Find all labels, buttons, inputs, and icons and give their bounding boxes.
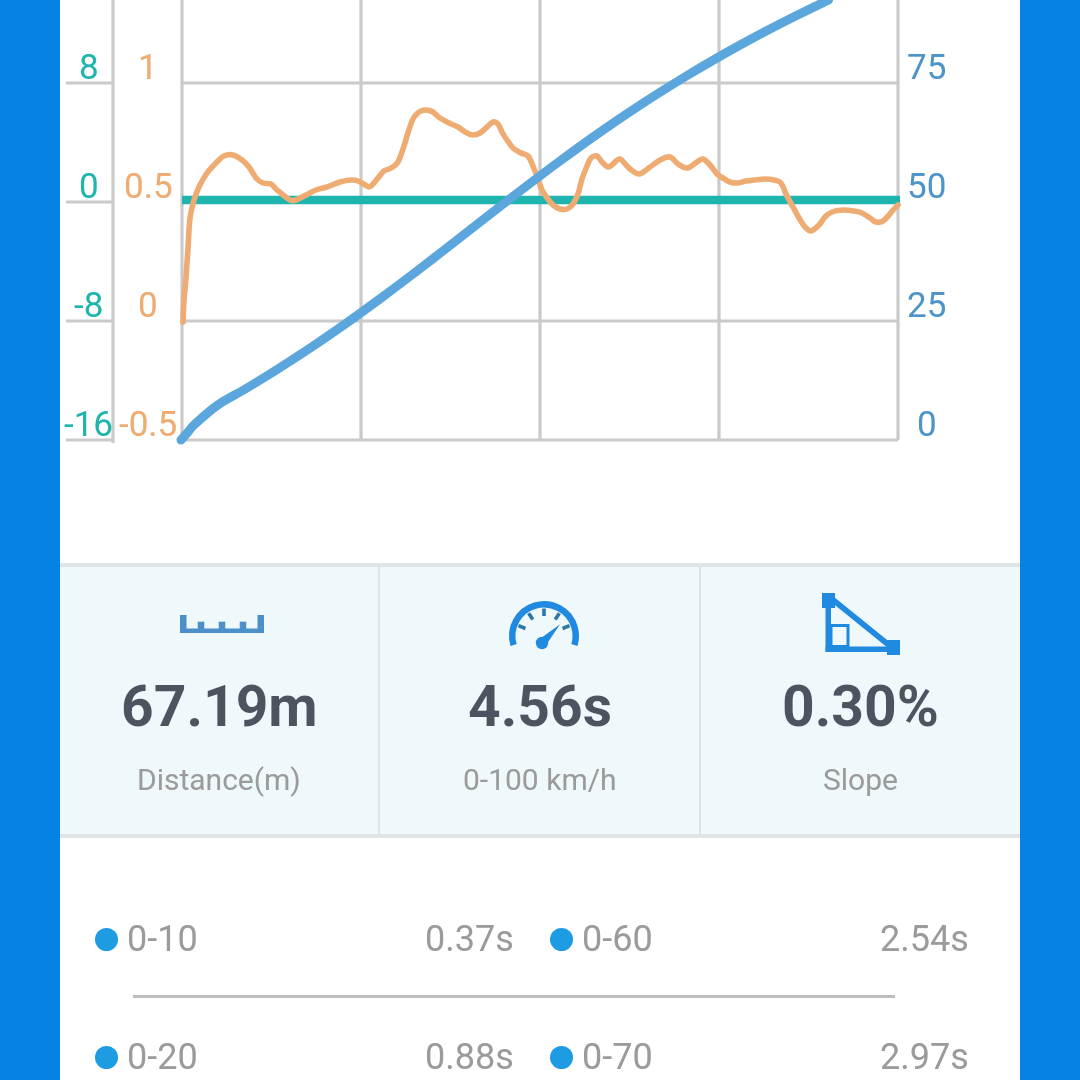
staticText: 0-100 km/h <box>463 762 617 797</box>
button[interactable]: 0-20 <box>95 1034 514 1080</box>
staticText: 0-70 <box>582 1036 653 1078</box>
button[interactable]: Slope <box>701 567 1020 834</box>
staticText: 50 <box>907 166 947 207</box>
button[interactable]: 0-60 <box>550 897 969 981</box>
staticText: 0 <box>917 404 937 445</box>
staticText: -8 <box>74 285 104 326</box>
staticText: 0 <box>138 285 158 326</box>
staticText: 2.54s <box>880 918 969 960</box>
staticText: 0 <box>79 166 99 207</box>
button[interactable]: Acceleration <box>380 567 699 834</box>
staticText: 8 <box>79 47 99 88</box>
button[interactable]: 0-10 <box>95 897 514 981</box>
staticText: 1 <box>138 47 158 88</box>
staticText: -0.5 <box>119 404 178 445</box>
staticText: 0.37s <box>425 918 514 960</box>
staticText: 4.56s <box>468 673 612 740</box>
staticText: 0.5 <box>124 166 173 207</box>
staticText: 67.19m <box>121 673 318 740</box>
staticText: 0.88s <box>425 1036 514 1078</box>
staticText: 75 <box>907 47 947 88</box>
staticText: -16 <box>64 404 114 445</box>
staticText: 0-10 <box>127 918 198 960</box>
staticText: 0-60 <box>582 918 653 960</box>
staticText: 25 <box>907 285 947 326</box>
staticText: 2.97s <box>880 1036 969 1078</box>
button[interactable]: 0-70 <box>550 1034 969 1080</box>
staticText: 0.30% <box>782 673 939 740</box>
staticText: 0-20 <box>127 1036 198 1078</box>
staticText: Distance(m) <box>137 762 301 797</box>
button[interactable]: Distance <box>60 567 378 834</box>
staticText: Slope <box>823 762 898 797</box>
